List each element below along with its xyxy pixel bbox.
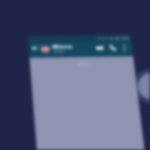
button[interactable] <box>41 43 75 55</box>
button[interactable]: Video call <box>95 42 107 54</box>
button[interactable]: Voice call <box>107 42 119 54</box>
button[interactable]: More options <box>119 41 130 54</box>
button[interactable] <box>28 58 136 150</box>
button[interactable]: Back <box>30 42 41 55</box>
